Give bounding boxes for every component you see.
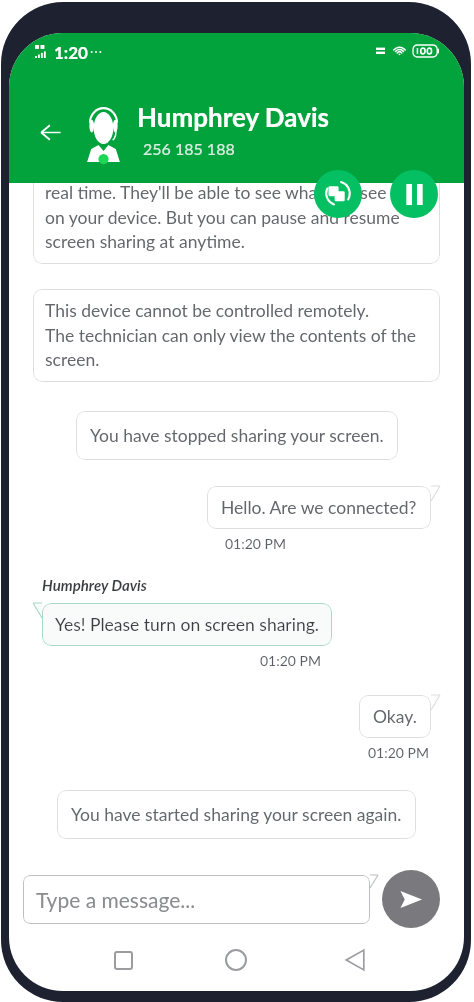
button[interactable]: This device cannot be controlled remotel…	[33, 289, 440, 382]
staticText: Type a message...	[36, 887, 196, 912]
button[interactable]: real time. They'll be able to see what y…	[33, 171, 440, 264]
button[interactable]: Send	[382, 870, 440, 928]
button[interactable]: You have started sharing your screen aga…	[57, 790, 416, 839]
button[interactable]: Switch screen	[314, 170, 362, 218]
button[interactable]: Back	[18, 99, 64, 145]
button[interactable]: Type a message...	[23, 875, 378, 924]
staticText: 01:20 PM	[225, 535, 286, 552]
staticText: Humphrey Davis	[137, 101, 329, 132]
staticText: Humphrey Davis	[42, 576, 147, 594]
button[interactable]: Recents	[100, 937, 146, 983]
staticText: 01:20 PM	[260, 652, 321, 669]
button[interactable]: Back	[332, 937, 378, 983]
staticText: You have started sharing your screen aga…	[71, 804, 402, 825]
staticText: You have stopped sharing your screen.	[90, 425, 384, 446]
button[interactable]: Okay.	[359, 695, 431, 738]
staticText: Yes! Please turn on screen sharing.	[55, 614, 319, 635]
staticText: 01:20 PM	[368, 744, 429, 761]
staticText: Hello. Are we connected?	[221, 497, 417, 518]
button[interactable]: Hello. Are we connected?	[207, 486, 431, 529]
button[interactable]: Pause	[390, 170, 438, 218]
staticText: 256 185 188	[143, 139, 235, 158]
staticText: 1:20	[54, 42, 88, 62]
staticText: Okay.	[373, 706, 417, 727]
staticText: This device cannot be controlled remotel…	[45, 300, 417, 369]
staticText: real time. They'll be able to see what y…	[45, 182, 400, 251]
button[interactable]: Home	[213, 937, 259, 983]
button[interactable]: You have stopped sharing your screen.	[76, 411, 398, 460]
button[interactable]: Yes! Please turn on screen sharing.	[42, 603, 332, 646]
